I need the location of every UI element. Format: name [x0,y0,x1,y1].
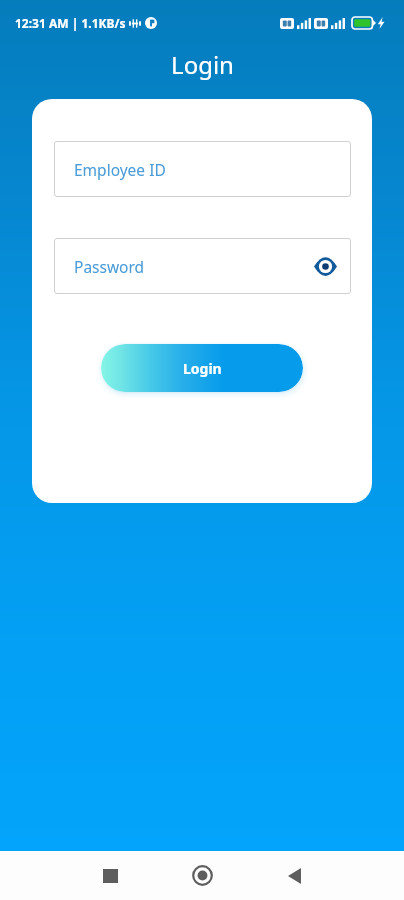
button[interactable]: Login [101,344,303,392]
button[interactable]: Back [263,851,325,900]
staticText: Employee ID [74,159,166,180]
button[interactable]: Employee ID [54,141,351,197]
staticText: Password [74,256,145,277]
button[interactable]: Password [54,238,351,294]
staticText: Login [183,359,222,378]
button[interactable]: Recents [79,851,141,900]
staticText: Login [171,48,234,81]
button[interactable]: Show password [310,251,340,281]
staticText: 12:31 AM | 1.1KB/s [15,15,126,31]
button[interactable]: Home [171,851,233,900]
